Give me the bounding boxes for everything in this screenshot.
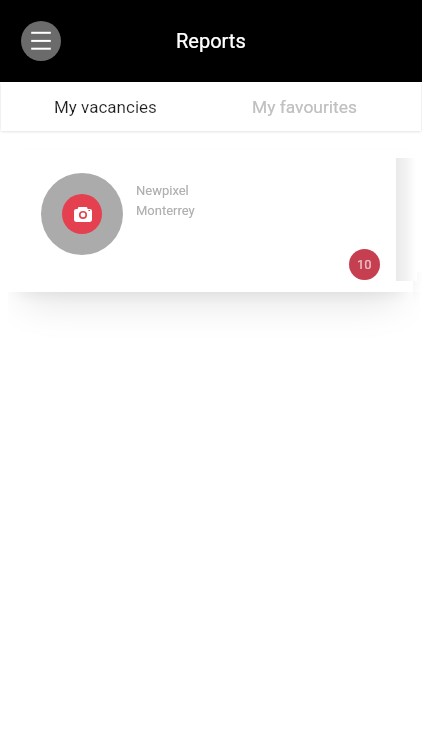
staticText: Monterrey — [136, 203, 195, 218]
button[interactable]: Open navigation menu — [21, 21, 61, 61]
staticText: Newpixel — [136, 183, 189, 198]
staticText: My favourites — [252, 97, 357, 117]
button[interactable]: My favourites — [251, 82, 358, 131]
staticText: 10 — [357, 257, 372, 272]
staticText: My vacancies — [54, 97, 157, 117]
staticText: Reports — [176, 29, 246, 52]
button[interactable]: Newpixel — [16, 150, 413, 292]
button[interactable]: My vacancies — [54, 82, 157, 131]
